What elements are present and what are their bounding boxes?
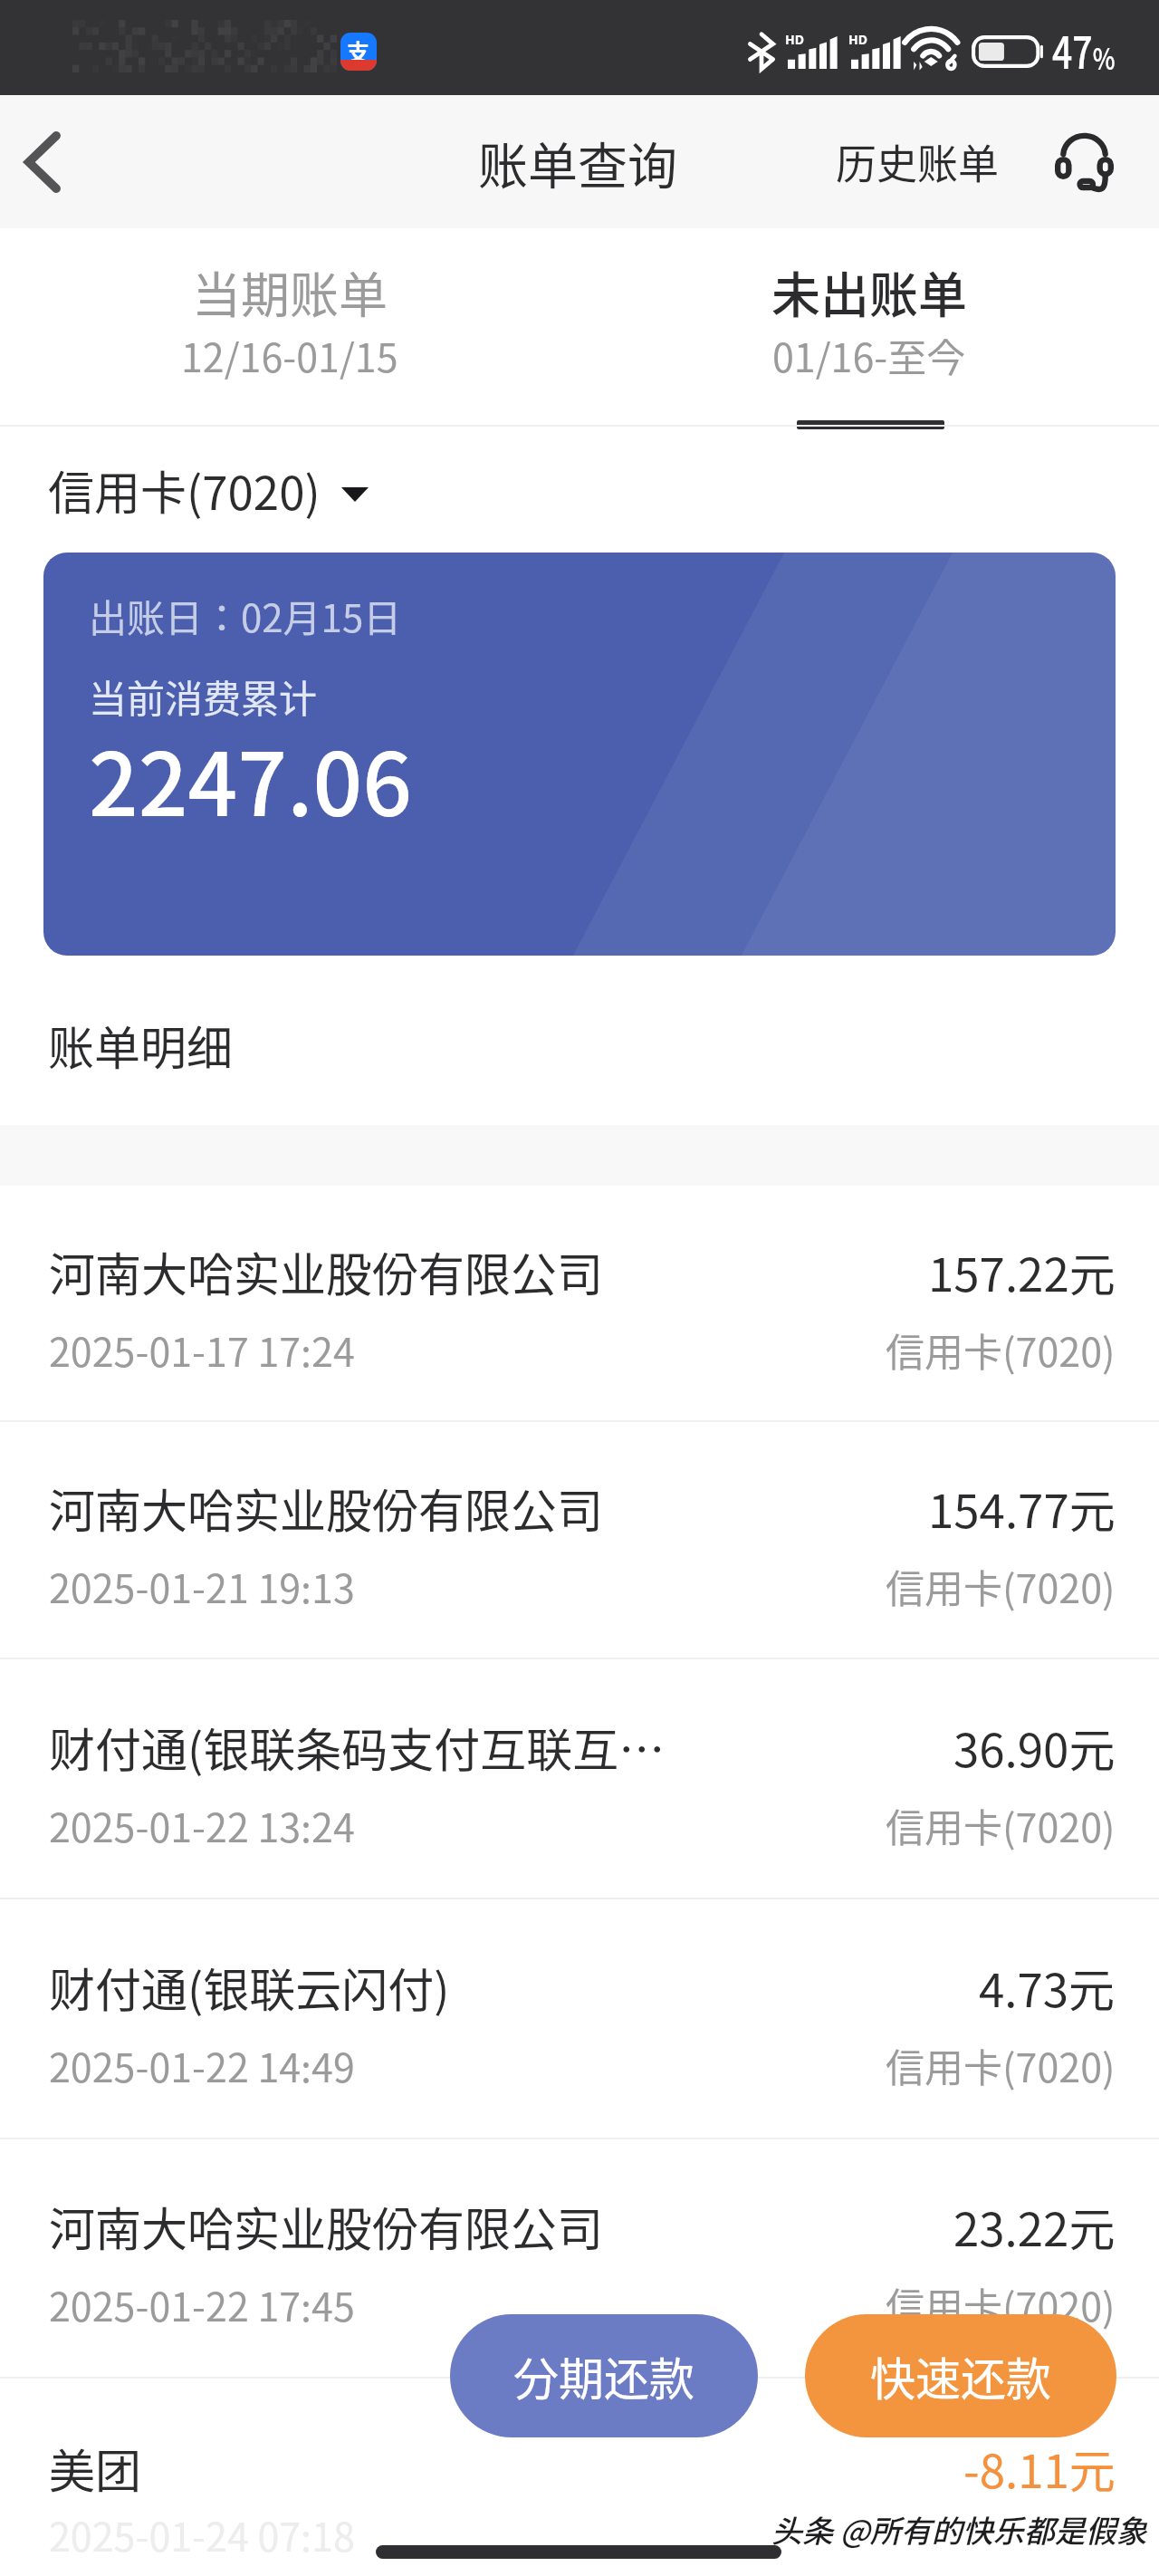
staticText: 当前消费累计 bbox=[89, 668, 318, 724]
staticText: 河南大哈实业股份有限公司 bbox=[49, 2193, 604, 2260]
staticText: 账单查询 bbox=[478, 126, 678, 198]
staticText: % bbox=[1093, 35, 1115, 79]
staticText: 2025-01-22 14:49 bbox=[49, 2037, 355, 2093]
staticText: 2025-01-21 19:13 bbox=[49, 1558, 355, 1614]
button[interactable]: Customer service bbox=[1043, 121, 1125, 203]
button[interactable]: 财付通(银联条码支付互联互… bbox=[0, 1659, 1159, 1898]
staticText: 财付通(银联条码支付互联互… bbox=[49, 1714, 666, 1781]
staticText: 账单明细 bbox=[48, 1012, 234, 1079]
button[interactable]: 河南大哈实业股份有限公司 bbox=[0, 1186, 1159, 1420]
staticText: 头条 @所有的快乐都是假象 bbox=[771, 2507, 1147, 2552]
button[interactable]: 未出账单 bbox=[579, 228, 1159, 427]
staticText: 信用卡(7020) bbox=[886, 1797, 1116, 1853]
button[interactable]: Back bbox=[0, 113, 91, 210]
staticText: 历史账单 bbox=[836, 132, 1000, 191]
button[interactable]: 分期还款 bbox=[450, 2314, 758, 2437]
staticText: 01/16-至今 bbox=[772, 327, 966, 383]
staticText: 2247.06 bbox=[89, 716, 412, 841]
staticText: 4.73元 bbox=[979, 1954, 1116, 2021]
staticText: 河南大哈实业股份有限公司 bbox=[49, 1475, 604, 1542]
button[interactable]: 财付通(银联云闪付) bbox=[0, 1899, 1159, 2138]
staticText: 分期还款 bbox=[513, 2343, 694, 2408]
staticText: 快速还款 bbox=[870, 2343, 1051, 2408]
staticText: 2025-01-22 13:24 bbox=[49, 1797, 355, 1853]
staticText: 36.90元 bbox=[953, 1714, 1116, 1781]
staticText: 47 bbox=[1052, 17, 1093, 82]
staticText: HD bbox=[785, 31, 804, 48]
button[interactable]: 信用卡(7020) bbox=[0, 427, 1159, 553]
button[interactable]: 当期账单 bbox=[0, 228, 579, 427]
button[interactable]: 河南大哈实业股份有限公司 bbox=[0, 2139, 1159, 2377]
staticText: -8.11元 bbox=[963, 2435, 1116, 2502]
staticText: 财付通(银联云闪付) bbox=[49, 1954, 450, 2021]
staticText: 154.77元 bbox=[928, 1475, 1116, 1542]
staticText: 出账日：02月15日 bbox=[89, 588, 402, 643]
button[interactable]: 快速还款 bbox=[805, 2314, 1116, 2437]
staticText: 信用卡(7020) bbox=[886, 2276, 1116, 2332]
staticText: 信用卡(7020) bbox=[886, 1558, 1116, 1614]
button[interactable]: 河南大哈实业股份有限公司 bbox=[0, 1422, 1159, 1658]
staticText: 当期账单 bbox=[192, 256, 388, 327]
staticText: HD bbox=[848, 31, 867, 48]
staticText: 2025-01-24 07:18 bbox=[49, 2506, 355, 2560]
staticText: 支 bbox=[347, 34, 370, 67]
staticText: 157.22元 bbox=[928, 1238, 1116, 1305]
staticText: 未出账单 bbox=[771, 256, 967, 327]
button[interactable]: 历史账单 bbox=[818, 111, 1018, 213]
staticText: 美团 bbox=[49, 2435, 142, 2502]
staticText: 12/16-01/15 bbox=[181, 327, 398, 383]
staticText: 23.22元 bbox=[953, 2193, 1116, 2260]
staticText: 2025-01-22 17:45 bbox=[49, 2276, 355, 2332]
staticText: 信用卡(7020) bbox=[48, 457, 321, 524]
staticText: 2025-01-17 17:24 bbox=[49, 1322, 355, 1378]
button[interactable]: 出账日：02月15日 bbox=[43, 553, 1116, 956]
staticText: 河南大哈实业股份有限公司 bbox=[49, 1238, 604, 1305]
staticText: 信用卡(7020) bbox=[886, 2037, 1116, 2093]
staticText: 信用卡(7020) bbox=[886, 1322, 1116, 1378]
